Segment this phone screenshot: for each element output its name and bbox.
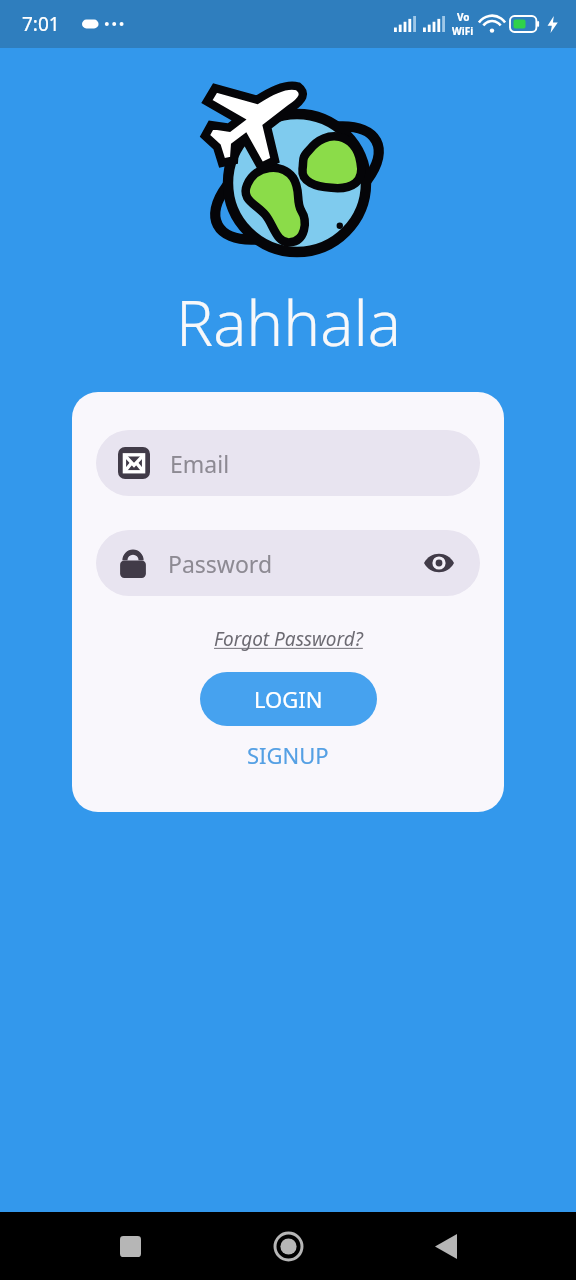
button[interactable]: Show password — [420, 548, 458, 578]
button[interactable]: LOGIN — [200, 672, 377, 726]
button[interactable]: Back — [418, 1218, 474, 1274]
staticText: SIGNUP — [247, 740, 329, 770]
staticText: LOGIN — [254, 684, 323, 714]
staticText: WiFi — [452, 24, 474, 38]
button[interactable]: SIGNUP — [237, 736, 339, 774]
staticText: Vo — [457, 10, 470, 24]
button[interactable]: Email — [96, 430, 480, 496]
button[interactable]: Forgot Password? — [206, 622, 371, 656]
staticText: Rahhala — [176, 280, 401, 364]
button[interactable]: Password — [96, 530, 480, 596]
button[interactable]: Recent apps — [102, 1218, 158, 1274]
staticText: Forgot Password? — [214, 626, 363, 652]
staticText: 7:01 — [22, 11, 60, 37]
staticText: Password — [168, 548, 273, 579]
button[interactable]: Home — [260, 1218, 316, 1274]
staticText: Email — [170, 448, 230, 479]
